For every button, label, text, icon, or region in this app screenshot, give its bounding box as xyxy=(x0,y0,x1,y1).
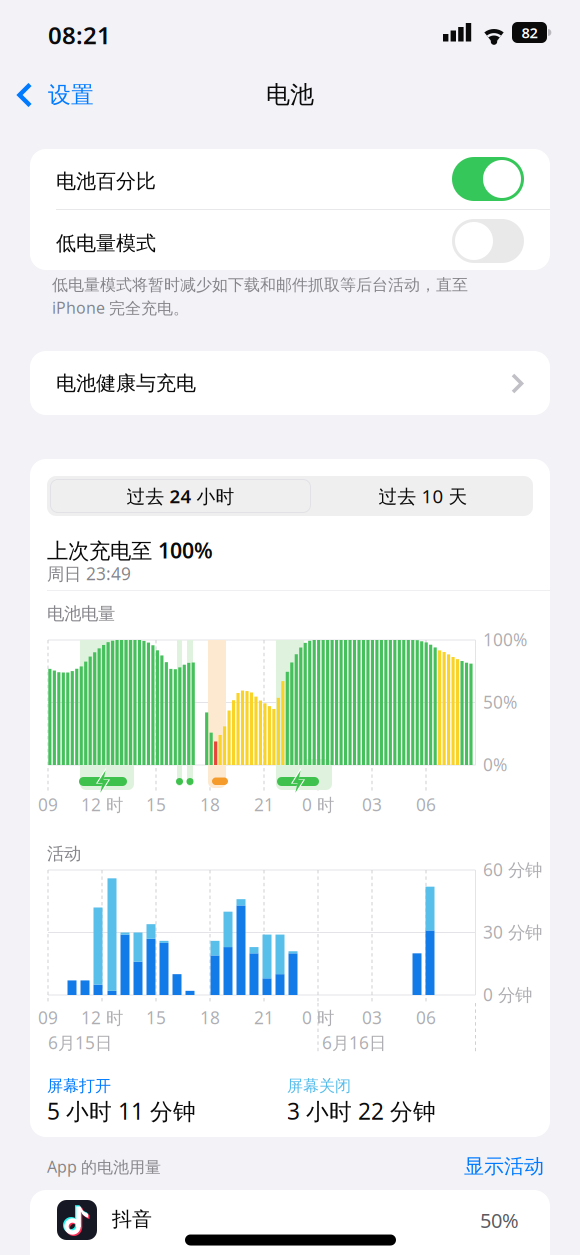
staticText: 抖音 xyxy=(112,1207,152,1232)
staticText: 屏幕关闭 xyxy=(287,1076,351,1096)
staticText: 15 xyxy=(146,1006,166,1029)
staticText: 显示活动 xyxy=(464,1154,544,1179)
staticText: 100% xyxy=(483,628,527,651)
staticText: 0 时 xyxy=(302,793,334,816)
staticText: 5 小时 11 分钟 xyxy=(47,1096,196,1126)
staticText: 06 xyxy=(416,1006,436,1029)
button[interactable]: 过去 10 天 xyxy=(313,476,533,516)
staticText: 低电量模式将暂时减少如下载和邮件抓取等后台活动，直至 xyxy=(52,275,468,295)
staticText: 08:21 xyxy=(48,19,111,51)
staticText: 15 xyxy=(146,793,166,816)
staticText: 03 xyxy=(362,1006,382,1029)
staticText: 上次充电至 100% xyxy=(47,536,213,564)
staticText: 0 时 xyxy=(302,1006,334,1029)
staticText: 12 时 xyxy=(81,1006,123,1029)
staticText: 屏幕打开 xyxy=(47,1076,111,1096)
staticText: 过去 10 天 xyxy=(378,484,467,508)
staticText: 0% xyxy=(483,753,507,776)
staticText: 电池健康与充电 xyxy=(56,371,196,396)
button[interactable]: 设置 xyxy=(17,80,94,110)
staticText: 18 xyxy=(200,1006,220,1029)
button[interactable]: 抖音 xyxy=(30,1190,580,1255)
staticText: 电池电量 xyxy=(47,603,115,624)
staticText: 3 小时 22 分钟 xyxy=(287,1096,436,1126)
button[interactable]: 电池百分比 xyxy=(452,157,524,201)
staticText: 09 xyxy=(38,793,58,816)
staticText: 50% xyxy=(483,690,517,713)
staticText: 03 xyxy=(362,793,382,816)
button[interactable]: 过去 24 小时 xyxy=(50,479,311,513)
staticText: 60 分钟 xyxy=(483,858,542,881)
staticText: iPhone 完全充电。 xyxy=(52,297,189,318)
staticText: 低电量模式 xyxy=(56,231,156,256)
staticText: 21 xyxy=(254,1006,274,1029)
staticText: 周日 23:49 xyxy=(47,562,131,585)
staticText: 活动 xyxy=(47,843,81,864)
staticText: 30 分钟 xyxy=(483,920,542,943)
staticText: 电池百分比 xyxy=(56,169,156,194)
staticText: 09 xyxy=(38,1006,58,1029)
staticText: 06 xyxy=(416,793,436,816)
staticText: 6月16日 xyxy=(322,1031,386,1054)
staticText: 设置 xyxy=(48,81,94,109)
staticText: 12 时 xyxy=(81,793,123,816)
staticText: 6月15日 xyxy=(48,1031,112,1054)
staticText: 21 xyxy=(254,793,274,816)
staticText: 82 xyxy=(521,23,537,42)
button[interactable]: 电池健康与充电 xyxy=(30,351,550,415)
staticText: 电池 xyxy=(266,80,314,109)
button[interactable]: 低电量模式 xyxy=(452,219,524,263)
staticText: 过去 24 小时 xyxy=(126,484,234,508)
staticText: 50% xyxy=(480,1207,519,1234)
staticText: 0 分钟 xyxy=(483,983,532,1006)
staticText: App 的电池用量 xyxy=(47,1156,161,1177)
staticText: 18 xyxy=(200,793,220,816)
button[interactable]: 显示活动 xyxy=(464,1154,544,1179)
